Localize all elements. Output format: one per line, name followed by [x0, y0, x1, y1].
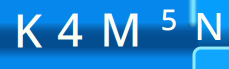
staticText: N: [194, 0, 224, 51]
staticText: K: [13, 0, 42, 60]
staticText: M: [100, 0, 142, 59]
staticText: 4: [57, 0, 83, 59]
staticText: 5: [160, 0, 177, 38]
